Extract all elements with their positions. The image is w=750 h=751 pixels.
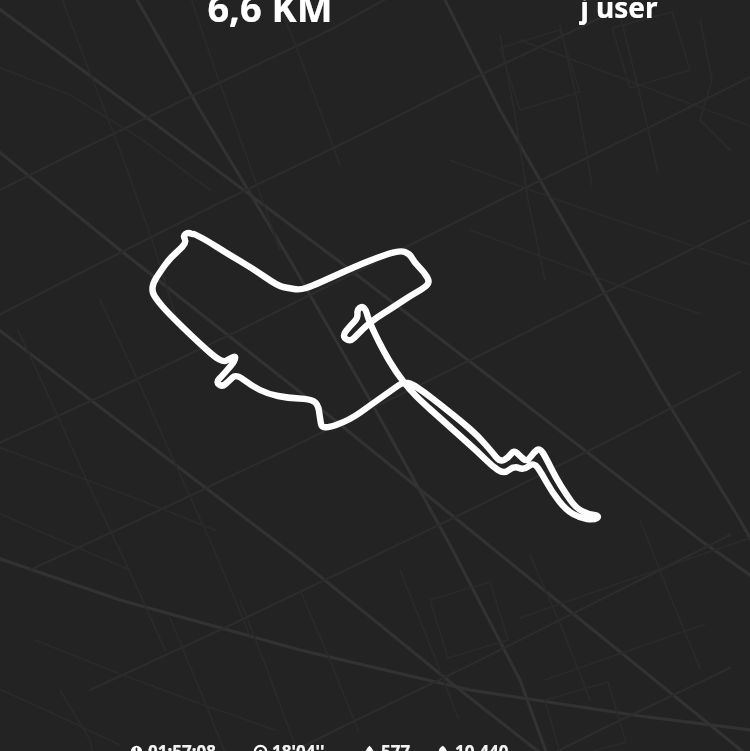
- button[interactable]: 577: [361, 740, 413, 751]
- other: 10.440: [437, 745, 450, 751]
- other: 18'04'': [254, 745, 267, 751]
- staticText: j user: [580, 0, 658, 26]
- button[interactable]: j user: [514, 0, 724, 26]
- staticText: 01:57:08: [148, 740, 216, 751]
- button[interactable]: 01:57:08: [128, 740, 218, 751]
- button[interactable]: 18'04'': [252, 740, 327, 751]
- staticText: 18'04'': [272, 740, 325, 751]
- staticText: 6,6 KM: [207, 0, 333, 33]
- staticText: 577: [381, 740, 411, 751]
- other: 01:57:08: [130, 745, 143, 751]
- staticText: 10.440: [455, 740, 509, 751]
- button[interactable]: 10.440: [435, 740, 511, 751]
- button[interactable]: 6,6 KM: [26, 0, 514, 33]
- other: 577: [363, 745, 376, 751]
